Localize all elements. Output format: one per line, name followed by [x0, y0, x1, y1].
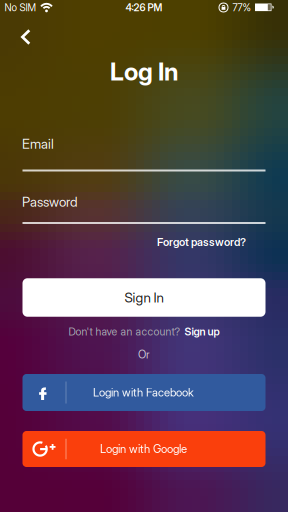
staticText: Email: [22, 136, 54, 152]
staticText: No SIM: [4, 1, 36, 14]
button[interactable]: Sign up: [184, 325, 219, 338]
staticText: Sign In: [124, 289, 163, 306]
staticText: 77%: [232, 1, 250, 14]
button[interactable]: Sign In: [22, 278, 265, 317]
staticText: Forgot password?: [157, 235, 246, 249]
button[interactable]: Login with Facebook: [22, 374, 265, 411]
staticText: Password: [22, 194, 78, 210]
staticText: 4:26 PM: [125, 1, 162, 14]
staticText: Don't have an account?: [68, 325, 180, 338]
staticText: Login with Google: [100, 442, 187, 456]
staticText: Log In: [110, 57, 178, 86]
staticText: Or: [138, 348, 150, 361]
staticText: Sign up: [184, 325, 219, 338]
button[interactable]: Login with Google: [22, 431, 265, 467]
staticText: Login with Facebook: [93, 386, 194, 399]
button[interactable]: Back: [8, 19, 44, 55]
button[interactable]: Forgot password?: [157, 235, 246, 249]
